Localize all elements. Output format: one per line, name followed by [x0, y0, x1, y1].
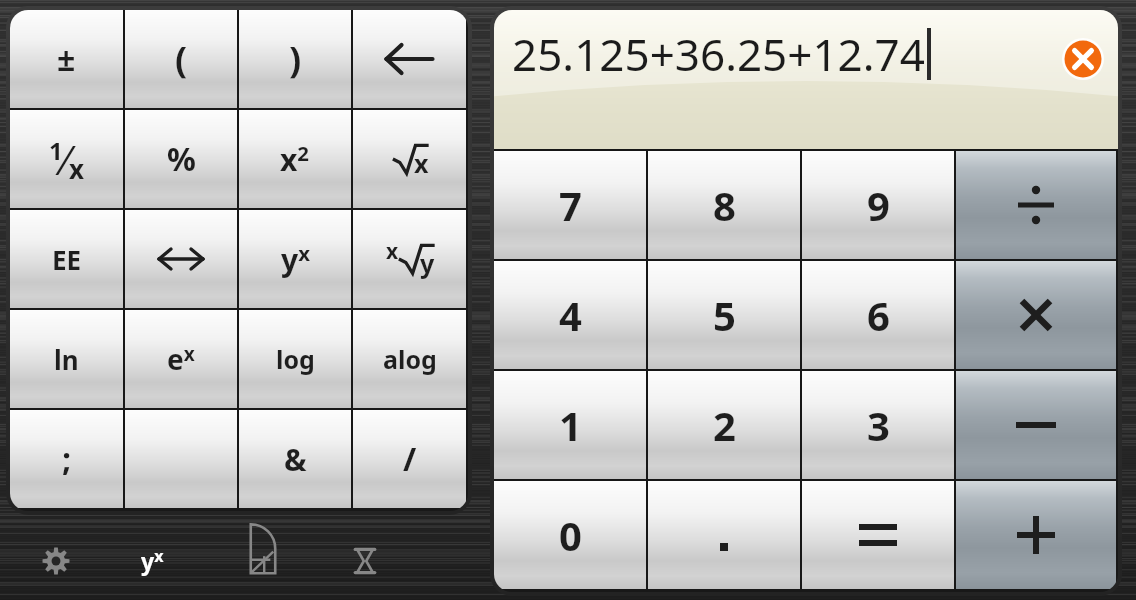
button[interactable] — [802, 481, 954, 589]
button[interactable]: ln — [10, 310, 123, 408]
button[interactable]: 1 — [494, 371, 646, 479]
button[interactable]: x2 — [239, 110, 351, 208]
staticText: x — [386, 237, 399, 266]
button[interactable]: 3 — [802, 371, 954, 479]
staticText: EE — [52, 242, 82, 277]
button[interactable]: log — [239, 310, 351, 408]
button[interactable]: & — [239, 410, 351, 508]
staticText: ) — [289, 35, 302, 84]
staticText: log — [276, 342, 315, 376]
button[interactable]: 7 — [494, 151, 646, 259]
staticText: alog — [383, 342, 437, 376]
button[interactable]: x — [353, 210, 466, 308]
button[interactable]: Clear — [1062, 38, 1104, 80]
button[interactable]: 1 — [10, 110, 123, 208]
button[interactable]: EE — [10, 210, 123, 308]
button[interactable]: 8 — [648, 151, 800, 259]
button[interactable]: yx — [126, 535, 178, 587]
button[interactable]: 4 — [494, 261, 646, 369]
staticText: 9 — [867, 178, 890, 232]
button[interactable]: ) — [239, 10, 351, 108]
button[interactable]: Angle mode — [237, 535, 289, 587]
button[interactable]: x — [353, 110, 466, 208]
button[interactable]: Settings — [30, 535, 82, 587]
staticText: 8 — [713, 178, 736, 232]
staticText: ln — [54, 342, 79, 377]
button[interactable]: 9 — [802, 151, 954, 259]
staticText: 5 — [713, 288, 736, 342]
button[interactable]: % — [125, 110, 237, 208]
button[interactable]: ex — [125, 310, 237, 408]
staticText: 4 — [559, 288, 582, 342]
button[interactable]: / — [353, 410, 466, 508]
staticText: & — [284, 439, 307, 480]
staticText: % — [167, 137, 196, 181]
staticText: y — [420, 246, 435, 280]
button[interactable]: alog — [353, 310, 466, 408]
staticText: 25.125+36.25+12.74 — [512, 24, 925, 84]
staticText: / — [403, 437, 417, 481]
button[interactable]: 2 — [648, 371, 800, 479]
staticText: 0 — [559, 508, 582, 562]
staticText: 7 — [559, 178, 582, 232]
button[interactable]: yx — [239, 210, 351, 308]
staticText: ; — [62, 437, 72, 481]
staticText: ⁄ — [63, 132, 69, 186]
button[interactable]: 6 — [802, 261, 954, 369]
button[interactable]: 5 — [648, 261, 800, 369]
button[interactable] — [956, 371, 1116, 479]
button[interactable]: ( — [125, 10, 237, 108]
staticText: 1 — [49, 134, 63, 167]
button[interactable] — [648, 481, 800, 589]
button[interactable] — [125, 210, 237, 308]
staticText: ex — [167, 340, 195, 378]
button[interactable] — [956, 261, 1116, 369]
staticText: x — [414, 146, 429, 180]
button[interactable]: 0 — [494, 481, 646, 589]
staticText: ( — [175, 35, 188, 84]
staticText: 1 — [559, 398, 582, 452]
button[interactable] — [956, 481, 1116, 589]
button[interactable]: ; — [10, 410, 123, 508]
button[interactable]: ± — [10, 10, 123, 108]
staticText: ± — [57, 37, 76, 81]
staticText: 6 — [867, 288, 890, 342]
staticText: yx — [281, 239, 310, 280]
button[interactable]: History — [339, 535, 391, 587]
button[interactable] — [125, 410, 237, 508]
button[interactable] — [956, 151, 1116, 259]
staticText: 2 — [713, 398, 736, 452]
staticText: yx — [141, 545, 164, 577]
button[interactable] — [353, 10, 466, 108]
staticText: x2 — [280, 139, 310, 180]
staticText: 3 — [867, 398, 890, 452]
staticText: x — [69, 151, 85, 186]
